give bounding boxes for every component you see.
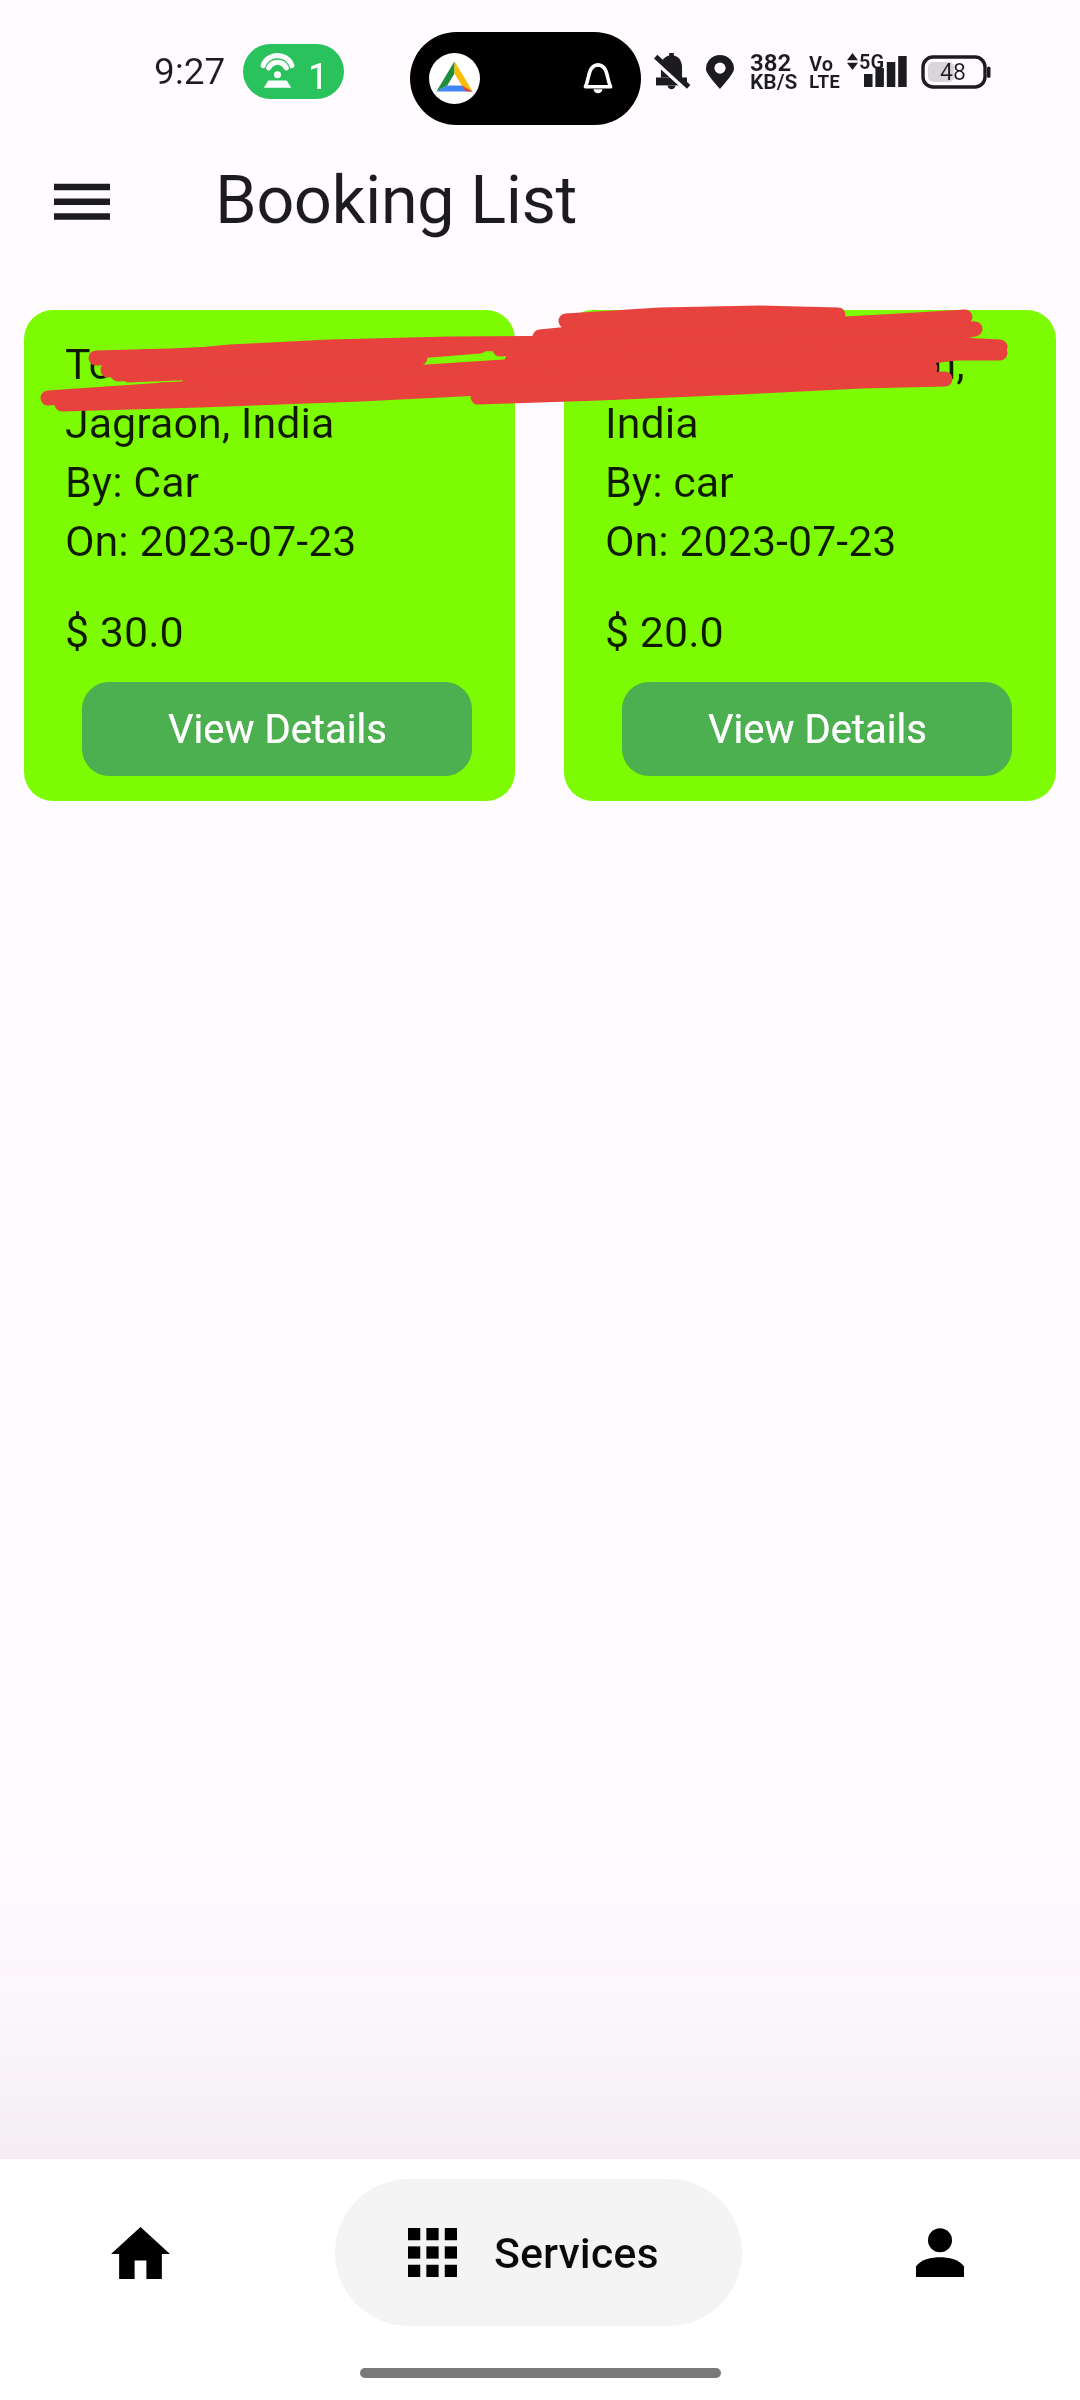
button[interactable]: Home [70,2182,211,2323]
button[interactable]: To: Some Road, Jagraon, India By: Car On… [24,310,515,801]
button[interactable]: Services [335,2179,742,2326]
staticText: View Details [708,706,927,753]
button[interactable]: Open navigation menu [36,156,128,248]
staticText: LTE [809,70,840,92]
button[interactable]: To: Place, Jagraon, India By: car On: 20… [564,310,1056,801]
staticText: 382 [750,49,792,77]
staticText: To: Place, Jagraon, India By: car On: 20… [605,339,965,566]
staticText: View Details [168,706,387,753]
staticText: Booking List [215,161,577,240]
staticText: Vo [809,52,833,75]
staticText: 48 [940,59,966,86]
staticText: 9:27 [154,50,226,93]
staticText: To: Some Road, Jagraon, India By: Car On… [65,339,363,566]
staticText: 5G [859,50,885,73]
staticText: 1 [308,56,329,98]
staticText: Services [494,2228,659,2278]
staticText: $ 20.0 [605,607,724,657]
staticText: KB/S [750,70,798,95]
button[interactable]: Profile [869,2182,1010,2323]
button[interactable]: View Details [82,682,472,776]
button[interactable]: View Details [622,682,1012,776]
staticText: $ 30.0 [65,607,184,657]
